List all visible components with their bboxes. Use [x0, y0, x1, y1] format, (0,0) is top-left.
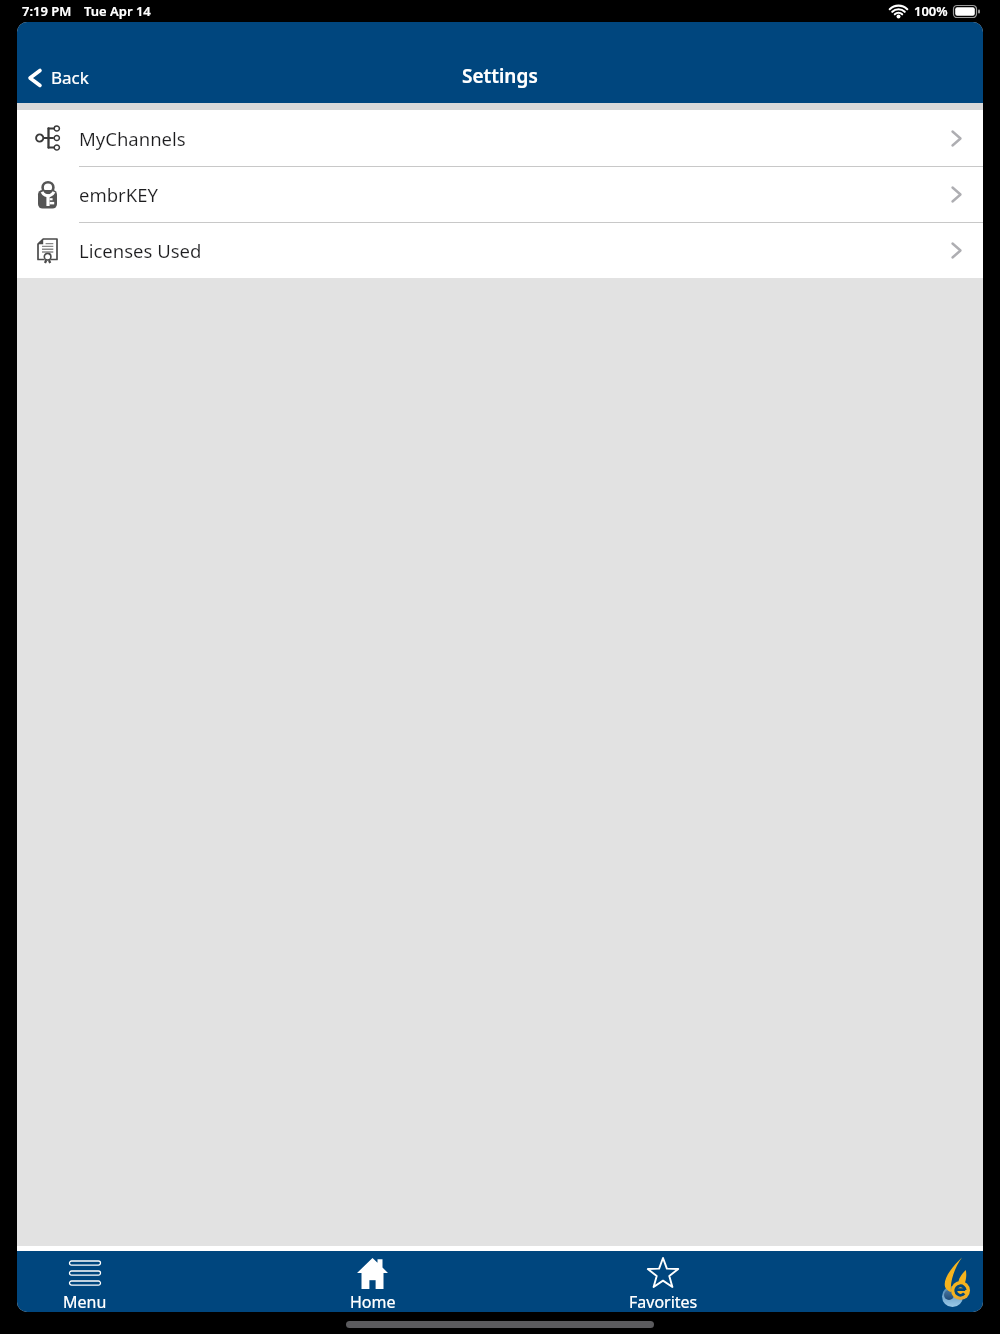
button[interactable]: Favorites: [613, 1251, 713, 1312]
button[interactable]: embrKEY: [17, 167, 983, 222]
button[interactable]: Licenses Used: [17, 223, 983, 278]
staticText: 7:19 PM: [22, 2, 72, 20]
staticText: MyChannels: [79, 126, 186, 151]
button[interactable]: Menu: [35, 1251, 135, 1312]
staticText: embrKEY: [79, 182, 158, 207]
staticText: Settings: [462, 63, 538, 89]
staticText: Tue Apr 14: [84, 2, 151, 20]
staticText: Menu: [63, 1291, 107, 1312]
button[interactable]: MyChannels: [17, 110, 983, 166]
staticText: 100%: [914, 2, 948, 20]
staticText: Favorites: [629, 1291, 698, 1312]
button[interactable]: [937, 1257, 971, 1307]
staticText: Licenses Used: [79, 238, 202, 263]
button[interactable]: Home: [323, 1251, 423, 1312]
staticText: Back: [51, 66, 89, 89]
button[interactable]: Back: [26, 64, 91, 91]
staticText: Home: [350, 1291, 396, 1312]
